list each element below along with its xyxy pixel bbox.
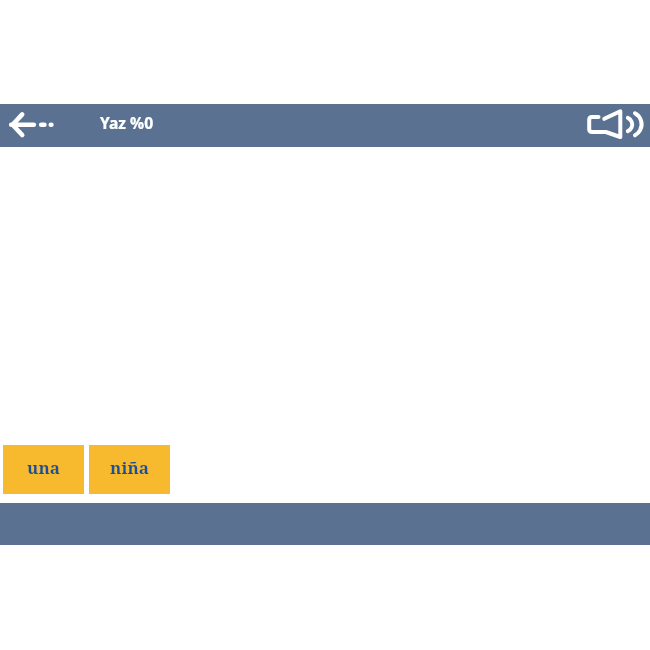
button[interactable]: niña xyxy=(89,445,170,494)
button[interactable]: una xyxy=(3,445,84,494)
button[interactable]: Play sound xyxy=(584,104,650,147)
staticText: Yaz %0 xyxy=(100,112,154,133)
staticText: niña xyxy=(110,456,149,479)
button[interactable]: Back xyxy=(4,104,60,147)
staticText: una xyxy=(27,456,60,479)
